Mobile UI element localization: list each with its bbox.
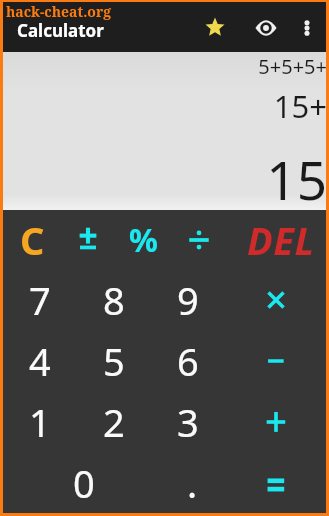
- staticText: 15: [266, 143, 327, 215]
- staticText: %: [129, 218, 158, 262]
- button[interactable]: 1: [3, 391, 77, 452]
- button[interactable]: Subtract: [225, 330, 326, 391]
- staticText: Calculator: [17, 19, 104, 42]
- staticText: DEL: [247, 214, 315, 266]
- button[interactable]: C: [5, 210, 60, 270]
- staticText: 4: [29, 335, 51, 387]
- staticText: hack-cheat.org: [6, 2, 112, 21]
- button[interactable]: 7: [3, 270, 77, 330]
- button[interactable]: More options: [291, 12, 323, 44]
- button[interactable]: Multiply: [225, 270, 326, 330]
- button[interactable]: Equals: [225, 452, 326, 513]
- button[interactable]: Plus minus: [60, 210, 115, 270]
- button[interactable]: Divide: [171, 210, 227, 270]
- staticText: 8: [103, 274, 125, 326]
- staticText: 5: [103, 335, 125, 387]
- button[interactable]: 9: [151, 270, 225, 330]
- button[interactable]: 4: [3, 330, 77, 391]
- staticText: 3: [177, 396, 199, 448]
- button[interactable]: 5: [77, 330, 151, 391]
- button[interactable]: 6: [151, 330, 225, 391]
- staticText: 2: [103, 396, 125, 448]
- button[interactable]: 3: [151, 391, 225, 452]
- staticText: 6: [177, 335, 199, 387]
- staticText: 15+: [273, 85, 327, 127]
- staticText: 0: [73, 457, 95, 509]
- button[interactable]: .: [164, 452, 220, 513]
- button[interactable]: 2: [77, 391, 151, 452]
- staticText: 1: [29, 396, 51, 448]
- button[interactable]: 0: [3, 452, 164, 513]
- staticText: C: [20, 214, 45, 266]
- staticText: 9: [177, 274, 199, 326]
- button[interactable]: %: [115, 210, 171, 270]
- button[interactable]: Preview: [248, 10, 284, 46]
- button[interactable]: 8: [77, 270, 151, 330]
- button[interactable]: DEL: [225, 210, 326, 270]
- staticText: .: [187, 457, 198, 509]
- staticText: 5+5+5+: [258, 53, 327, 80]
- button[interactable]: Add: [225, 391, 326, 452]
- button[interactable]: Favorite: [197, 9, 233, 45]
- staticText: 7: [29, 274, 51, 326]
